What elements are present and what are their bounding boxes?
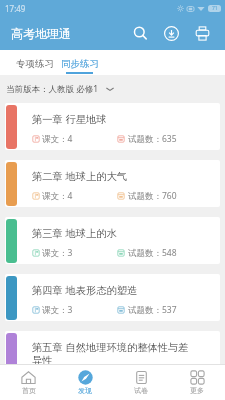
- button[interactable]: 同步练习: [61, 50, 99, 75]
- staticText: 试题数：537: [128, 304, 177, 316]
- staticText: 第五章 自然地理环境的整体性与差异性: [32, 340, 194, 367]
- staticText: 课文：4: [42, 133, 73, 145]
- staticText: 更多: [190, 386, 204, 395]
- staticText: 当前版本：人教版 必修1: [6, 83, 99, 95]
- staticText: 发现: [78, 386, 92, 395]
- button[interactable]: 第二章 地球上的大气: [5, 160, 220, 207]
- staticText: 第三章 地球上的水: [32, 226, 117, 240]
- staticText: 试题数：548: [128, 247, 177, 259]
- staticText: 课文：4: [42, 190, 73, 202]
- staticText: 课文：3: [42, 304, 73, 316]
- staticText: 第二章 地球上的大气: [32, 169, 127, 183]
- staticText: 17:49: [5, 3, 26, 14]
- staticText: 试卷: [134, 386, 148, 395]
- staticText: 71: [212, 5, 218, 12]
- staticText: 试题数：760: [128, 190, 177, 202]
- button[interactable]: Print: [187, 18, 218, 49]
- staticText: 专项练习: [16, 58, 54, 70]
- button[interactable]: 当前版本：人教版 必修1: [6, 83, 114, 95]
- staticText: 第四章 地表形态的塑造: [32, 283, 138, 297]
- button[interactable]: 第四章 地表形态的塑造: [5, 274, 220, 321]
- button[interactable]: Search: [125, 18, 156, 49]
- button[interactable]: 发现: [57, 365, 113, 400]
- staticText: 第一章 行星地球: [32, 112, 107, 126]
- staticText: 同步练习: [61, 58, 99, 70]
- button[interactable]: 试卷: [113, 365, 169, 400]
- staticText: 课文：3: [42, 247, 73, 259]
- button[interactable]: 第三章 地球上的水: [5, 217, 220, 264]
- button[interactable]: 第一章 行星地球: [5, 103, 220, 150]
- staticText: 首页: [22, 386, 36, 395]
- staticText: 高考地理通: [11, 26, 71, 41]
- staticText: 试题数：635: [128, 133, 177, 145]
- button[interactable]: 更多: [169, 365, 225, 400]
- button[interactable]: 专项练习: [16, 50, 54, 75]
- staticText: 试题数：421: [128, 374, 177, 386]
- button[interactable]: 首页: [0, 365, 57, 400]
- button[interactable]: Download: [156, 18, 187, 49]
- button[interactable]: 第五章 自然地理环境的整体性与差异性: [5, 331, 220, 390]
